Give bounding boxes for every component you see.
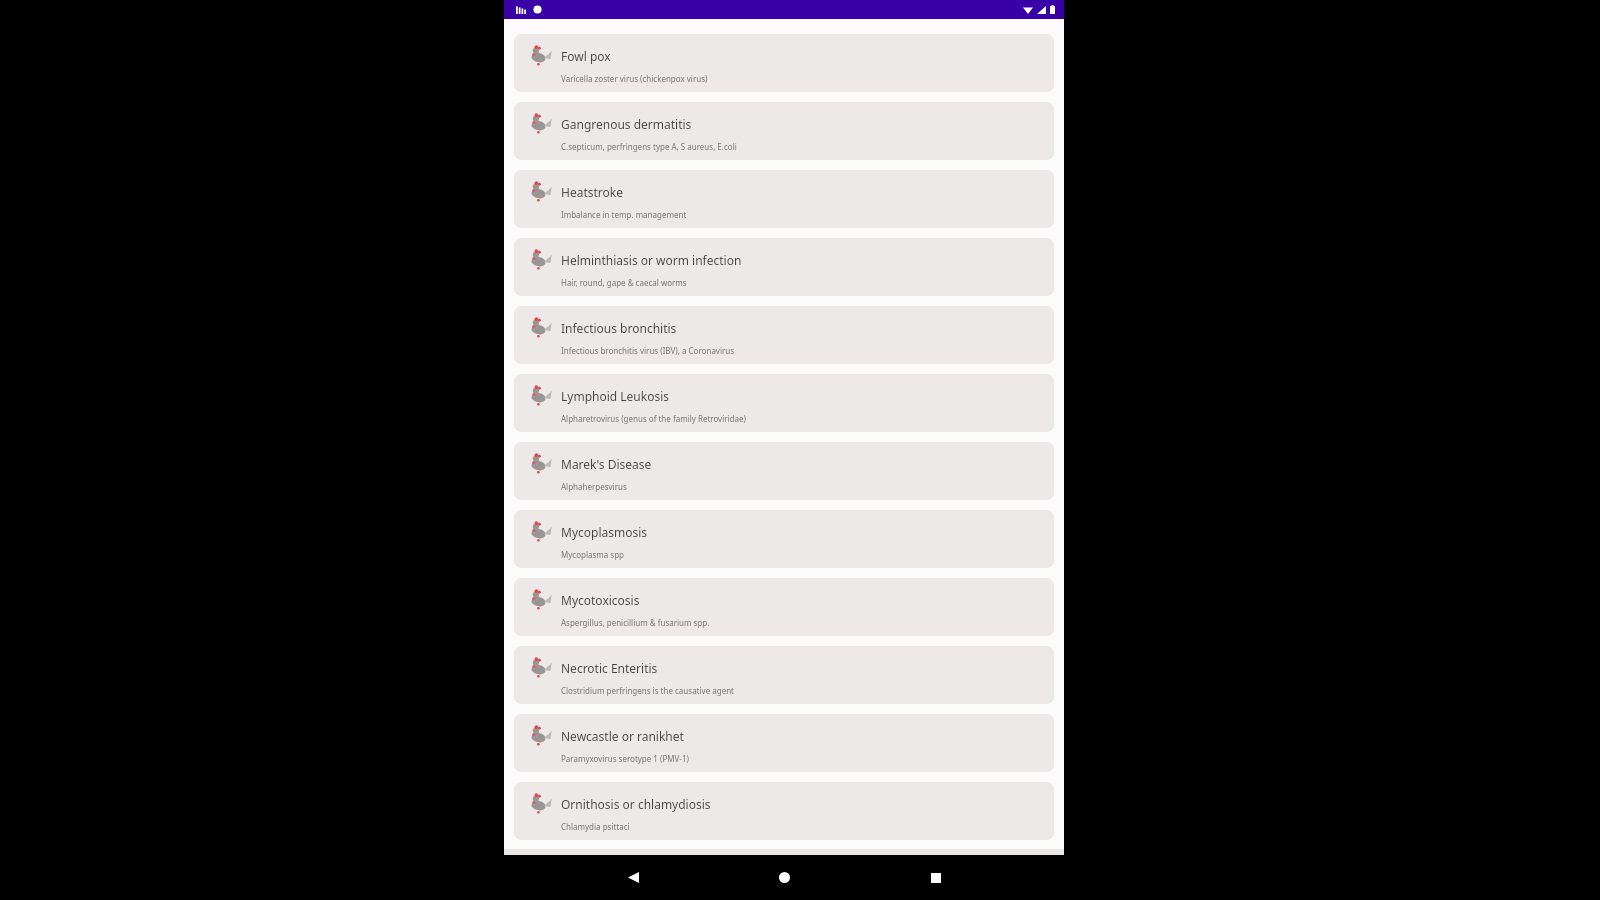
button[interactable]: Chicken bbox=[514, 102, 1054, 160]
other: Chicken bbox=[528, 587, 554, 613]
staticText: Paramyxovirus serotype 1 (PMV-1) bbox=[561, 753, 689, 764]
staticText: Ornithosis or chlamydiosis bbox=[561, 796, 711, 812]
staticText: Varicella zoster virus (chickenpox virus… bbox=[561, 73, 708, 84]
other: Chicken bbox=[528, 451, 554, 477]
button[interactable]: Recents bbox=[913, 855, 959, 900]
staticText: Imbalance in temp. management bbox=[561, 209, 687, 220]
button[interactable]: Chicken bbox=[514, 510, 1054, 568]
button[interactable]: Chicken bbox=[514, 442, 1054, 500]
other: Chicken bbox=[528, 519, 554, 545]
other: Chicken bbox=[528, 655, 554, 681]
staticText: Fowl pox bbox=[561, 48, 611, 64]
other: Chicken bbox=[528, 315, 554, 341]
staticText: Alphaherpesvirus bbox=[561, 481, 627, 492]
button[interactable]: Chicken bbox=[514, 578, 1054, 636]
button[interactable]: Chicken bbox=[514, 306, 1054, 364]
staticText: Mycotoxicosis bbox=[561, 592, 640, 608]
other: Chicken bbox=[528, 179, 554, 205]
staticText: Gangrenous dermatitis bbox=[561, 116, 692, 132]
staticText: Mycoplasma spp bbox=[561, 549, 625, 560]
button[interactable]: Chicken bbox=[514, 646, 1054, 704]
staticText: Lymphoid Leukosis bbox=[561, 388, 670, 404]
other: Chicken bbox=[528, 383, 554, 409]
other: Chicken bbox=[528, 247, 554, 273]
staticText: Marek's Disease bbox=[561, 456, 652, 472]
staticText: Necrotic Enteritis bbox=[561, 660, 658, 676]
staticText: Clostridium perfringens is the causative… bbox=[561, 685, 734, 696]
button[interactable]: Chicken bbox=[514, 170, 1054, 228]
button[interactable]: Chicken bbox=[514, 34, 1054, 92]
other: Chicken bbox=[528, 111, 554, 137]
staticText: Helminthiasis or worm infection bbox=[561, 252, 742, 268]
button[interactable]: Chicken bbox=[514, 714, 1054, 772]
staticText: Aspergillus, penicillium & fusarium spp. bbox=[561, 617, 710, 628]
other: Chicken bbox=[528, 723, 554, 749]
staticText: Hair, round, gape & caecal worms bbox=[561, 277, 687, 288]
staticText: Heatstroke bbox=[561, 184, 623, 200]
button[interactable]: Home bbox=[761, 855, 807, 900]
staticText: Infectious bronchitis virus (IBV), a Cor… bbox=[561, 345, 735, 356]
button[interactable]: Chicken bbox=[514, 374, 1054, 432]
staticText: C.septicum, perfringens type A, S aureus… bbox=[561, 141, 737, 152]
staticText: Infectious bronchitis bbox=[561, 320, 677, 336]
button[interactable]: Chicken bbox=[514, 238, 1054, 296]
staticText: Newcastle or ranikhet bbox=[561, 728, 684, 744]
button[interactable]: Chicken bbox=[514, 782, 1054, 840]
other: Chicken bbox=[528, 791, 554, 817]
button[interactable]: Back bbox=[610, 855, 656, 900]
staticText: Mycoplasmosis bbox=[561, 524, 648, 540]
staticText: Chlamydia psittaci bbox=[561, 821, 630, 832]
staticText: Alpharetrovirus (genus of the family Ret… bbox=[561, 413, 746, 424]
other: Chicken bbox=[528, 43, 554, 69]
